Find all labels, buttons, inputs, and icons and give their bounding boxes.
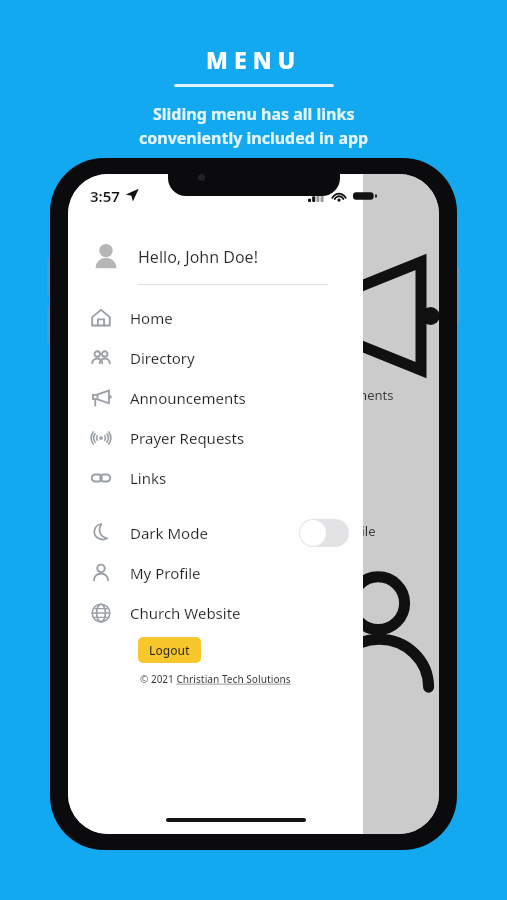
button[interactable]: Church Website — [68, 593, 363, 633]
staticText: Sliding menu has all links — [153, 103, 355, 125]
staticText: Hello, John Doe! — [138, 246, 258, 268]
staticText: Prayer Requests — [130, 428, 245, 448]
staticText: Dark Mode — [130, 523, 208, 543]
staticText: 3:57 — [90, 186, 120, 206]
staticText: file — [357, 522, 376, 540]
staticText: ments — [355, 386, 394, 404]
staticText: Directory — [130, 348, 195, 368]
button[interactable]: Directory — [68, 338, 363, 378]
staticText: My Profile — [130, 563, 201, 583]
staticText: Links — [130, 468, 167, 488]
staticText: conveniently included in app — [139, 127, 369, 149]
button[interactable]: Home — [68, 298, 363, 338]
staticText: Home — [130, 308, 173, 328]
button[interactable]: Announcements — [68, 378, 363, 418]
button[interactable]: © 2021 Christian Tech Solutions — [140, 672, 291, 686]
staticText: Announcements — [130, 388, 246, 408]
button[interactable]: Hello, John Doe! — [68, 234, 363, 280]
staticText: Church Website — [130, 603, 241, 623]
button[interactable]: Links — [68, 458, 363, 498]
button[interactable]: Dark Mode toggle — [299, 519, 349, 547]
button[interactable]: Logout — [138, 637, 201, 663]
staticText: Logout — [149, 642, 190, 658]
staticText: MENU — [206, 44, 302, 75]
button[interactable]: Dark Mode — [68, 513, 363, 553]
button[interactable]: Prayer Requests — [68, 418, 363, 458]
button[interactable]: My Profile — [68, 553, 363, 593]
